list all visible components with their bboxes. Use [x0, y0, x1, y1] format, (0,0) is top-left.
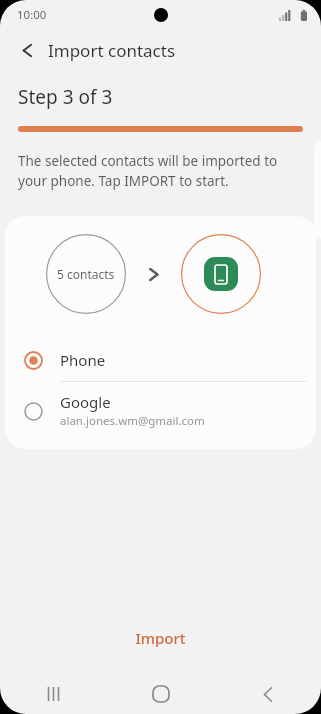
staticText: Step 3 of 3 — [18, 84, 113, 110]
button[interactable]: Phone — [5, 339, 316, 381]
staticText: 10:00 — [17, 7, 47, 23]
button[interactable]: Back — [214, 674, 321, 714]
staticText: Phone — [60, 350, 106, 370]
button[interactable]: Import — [0, 614, 321, 662]
button[interactable]: Back — [8, 31, 46, 69]
button[interactable]: Home — [107, 674, 214, 714]
staticText: The selected contacts will be imported t… — [18, 152, 297, 190]
staticText: 5 contacts — [57, 266, 115, 282]
staticText: Google — [60, 392, 111, 412]
staticText: Import — [135, 628, 186, 648]
staticText: Import contacts — [48, 39, 176, 62]
button[interactable]: Recent apps — [0, 674, 107, 714]
staticText: alan.jones.wm@gmail.com — [60, 413, 205, 429]
button[interactable]: Google — [5, 382, 316, 439]
